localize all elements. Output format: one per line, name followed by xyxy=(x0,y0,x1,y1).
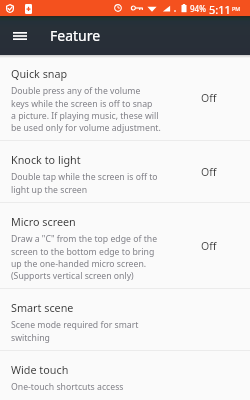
button[interactable]: Smart scene xyxy=(0,289,250,350)
staticText: 94% xyxy=(190,3,206,14)
staticText: Double tap while the screen is off to li… xyxy=(11,171,158,195)
staticText: Smart scene xyxy=(11,300,74,315)
staticText: Micro screen xyxy=(11,214,76,229)
staticText: Wide touch xyxy=(11,362,69,377)
button[interactable]: Knock to light xyxy=(0,141,250,202)
staticText: Feature xyxy=(50,26,101,45)
button[interactable]: Quick snap xyxy=(0,55,250,140)
button[interactable]: Micro screen xyxy=(0,203,250,288)
staticText: 5:11 xyxy=(209,2,231,17)
staticText: Knock to light xyxy=(11,152,81,167)
staticText: Draw a "C" from the top edge of the scre… xyxy=(11,233,158,281)
staticText: Off xyxy=(201,239,217,253)
staticText: Off xyxy=(201,91,217,105)
staticText: PM xyxy=(232,5,241,12)
staticText: Quick snap xyxy=(11,66,68,81)
button[interactable]: Open navigation menu xyxy=(11,27,29,45)
button[interactable]: Wide touch xyxy=(0,351,250,400)
staticText: Double press any of the volume keys whil… xyxy=(11,85,161,133)
staticText: One-touch shortcuts access xyxy=(11,381,124,393)
staticText: Off xyxy=(201,165,217,179)
staticText: Scene mode required for smart switching xyxy=(11,319,139,343)
